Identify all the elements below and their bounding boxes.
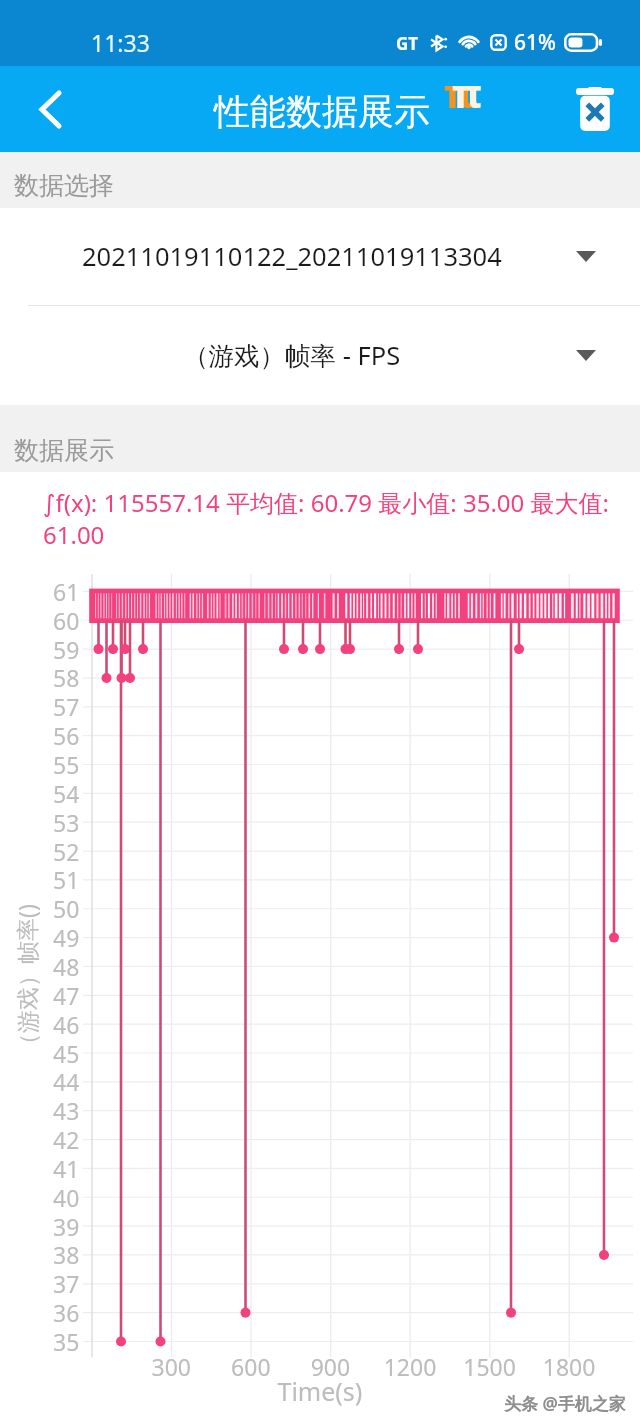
staticText: 11:33 bbox=[91, 27, 150, 58]
staticText: π bbox=[444, 65, 474, 119]
staticText: GT bbox=[396, 32, 419, 55]
staticText: ∫f(x): 115557.14 平均值: 60.79 最小值: 35.00 最… bbox=[43, 486, 634, 551]
staticText: π bbox=[452, 65, 482, 119]
button[interactable]: （游戏）帧率 - FPS bbox=[0, 306, 640, 405]
staticText: （游戏）帧率 - FPS bbox=[183, 338, 401, 373]
staticText: 数据展示 bbox=[14, 435, 114, 466]
button[interactable]: Back bbox=[18, 77, 82, 141]
button[interactable]: 20211019110122_20211019113304 bbox=[0, 208, 640, 305]
staticText: 性能数据展示 bbox=[214, 89, 430, 134]
staticText: 61% bbox=[514, 28, 556, 57]
staticText: 20211019110122_20211019113304 bbox=[82, 239, 502, 274]
button[interactable]: Delete bbox=[564, 78, 626, 140]
staticText: 数据选择 bbox=[14, 170, 114, 201]
